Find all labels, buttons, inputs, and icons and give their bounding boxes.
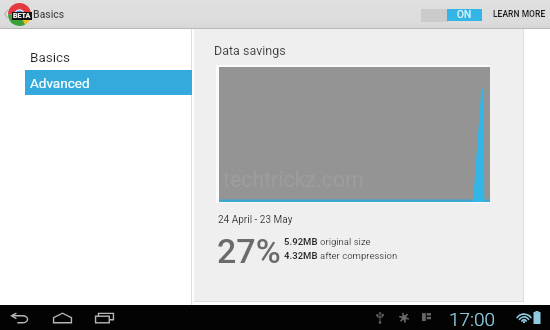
button[interactable]: Recent apps (90, 309, 118, 327)
staticText: 4.32MB (284, 250, 320, 261)
staticText: techtrickz.com (223, 167, 364, 192)
staticText: LEARN MORE (493, 9, 546, 19)
button[interactable]: Back (6, 309, 34, 327)
staticText: original size (320, 236, 371, 247)
staticText: Data savings (214, 43, 286, 58)
button[interactable]: Basics (0, 45, 192, 68)
staticText: Basics (33, 8, 65, 20)
staticText: 5.92MB (284, 236, 320, 247)
staticText: BETA (13, 12, 31, 20)
button[interactable]: Navigate up (0, 4, 12, 24)
staticText: 24 April - 23 May (218, 214, 293, 226)
staticText: ON (457, 9, 472, 21)
staticText: after compression (320, 250, 398, 261)
staticText: Advanced (30, 75, 90, 91)
button[interactable]: Advanced (25, 70, 192, 95)
staticText: 17:00 (449, 308, 496, 330)
staticText: Basics (30, 49, 71, 65)
button[interactable]: Data saver on (417, 4, 487, 24)
button[interactable]: LEARN MORE (489, 4, 550, 24)
staticText: 27% (217, 231, 281, 271)
button[interactable]: Home (48, 309, 76, 327)
